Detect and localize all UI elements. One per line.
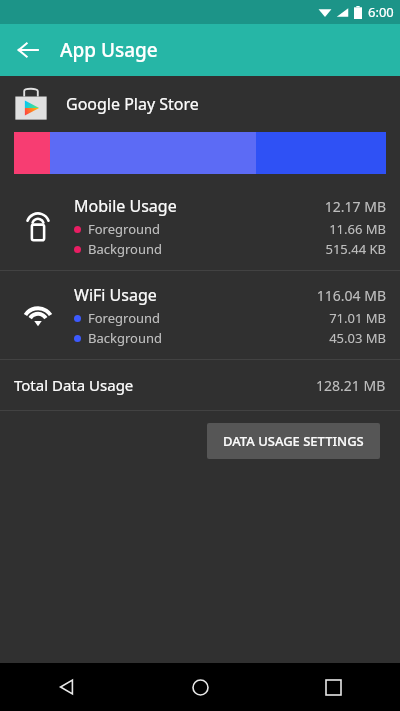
staticText: 515.44 KB xyxy=(325,240,386,258)
staticText: 128.21 MB xyxy=(316,376,386,395)
button[interactable]: WiFi Usage xyxy=(0,271,400,359)
staticText: 116.04 MB xyxy=(316,286,386,305)
button[interactable]: Total Data Usage xyxy=(0,360,400,410)
staticText: 45.03 MB xyxy=(329,329,386,347)
button[interactable]: Back xyxy=(0,663,134,711)
staticText: WiFi Usage xyxy=(74,284,316,306)
staticText: Mobile Usage xyxy=(74,195,324,217)
staticText: 12.17 MB xyxy=(324,197,386,216)
staticText: 71.01 MB xyxy=(329,309,386,327)
staticText: Background xyxy=(88,240,325,258)
staticText: Foreground xyxy=(88,220,329,238)
button[interactable]: Home xyxy=(134,663,267,711)
staticText: App Usage xyxy=(60,37,158,63)
button[interactable]: DATA USAGE SETTINGS xyxy=(207,423,380,459)
button[interactable]: Google Play Store xyxy=(0,76,400,132)
staticText: Total Data Usage xyxy=(14,375,316,395)
staticText: Google Play Store xyxy=(66,93,199,115)
button[interactable]: Back xyxy=(6,28,50,72)
button[interactable]: Mobile Usage xyxy=(0,182,400,270)
button[interactable]: Recent apps xyxy=(267,663,400,711)
staticText: 6:00 xyxy=(368,3,394,21)
staticText: Foreground xyxy=(88,309,329,327)
staticText: DATA USAGE SETTINGS xyxy=(223,432,364,450)
staticText: Background xyxy=(88,329,329,347)
staticText: 11.66 MB xyxy=(329,220,386,238)
